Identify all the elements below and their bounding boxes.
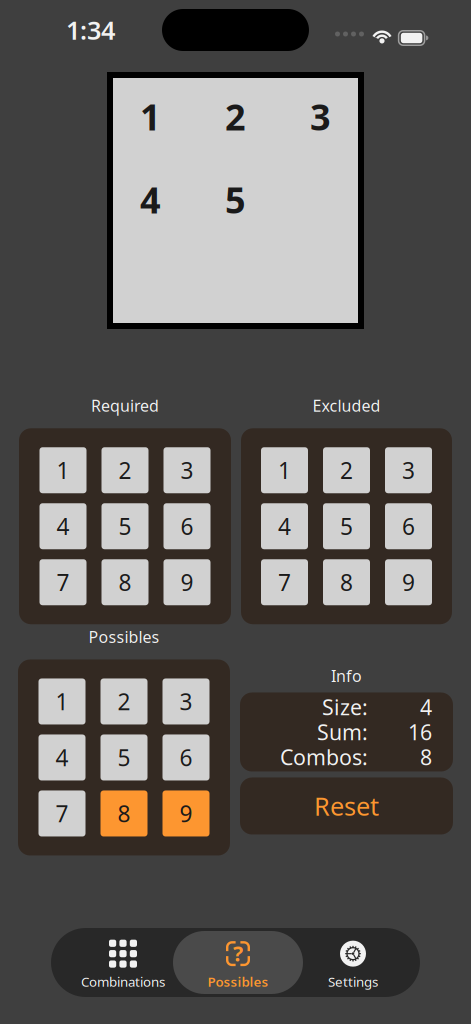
button[interactable]: 3 <box>163 447 210 493</box>
staticText: 5 <box>117 742 130 772</box>
staticText: 1 <box>278 455 291 485</box>
staticText: 4 <box>420 693 432 721</box>
staticText: 8 <box>118 567 131 597</box>
button[interactable]: 5 <box>101 503 148 549</box>
button[interactable]: 2 <box>100 678 147 724</box>
staticText: 7 <box>55 798 68 828</box>
button[interactable]: 3 <box>385 447 432 493</box>
button[interactable]: 8 <box>101 559 148 605</box>
staticText: 3 <box>310 93 331 140</box>
button[interactable]: 7 <box>261 559 308 605</box>
button[interactable]: 9 <box>162 790 209 836</box>
button[interactable]: 4 <box>261 503 308 549</box>
staticText: 9 <box>180 567 193 597</box>
button[interactable]: ? <box>173 931 303 994</box>
staticText: 3 <box>180 455 193 485</box>
button[interactable]: 1 <box>39 447 86 493</box>
button[interactable]: Reset <box>240 777 453 834</box>
button[interactable]: 9 <box>163 559 210 605</box>
button[interactable]: 8 <box>323 559 370 605</box>
button[interactable]: 9 <box>385 559 432 605</box>
staticText: 1 <box>55 686 68 716</box>
button[interactable]: 7 <box>39 559 86 605</box>
button[interactable]: 5 <box>323 503 370 549</box>
button[interactable]: 5 <box>100 734 147 780</box>
staticText: 8 <box>420 743 432 771</box>
staticText: 2 <box>118 455 131 485</box>
staticText: 4 <box>278 511 291 541</box>
staticText: 4 <box>55 742 68 772</box>
staticText: 2 <box>340 455 353 485</box>
staticText: 6 <box>179 742 192 772</box>
button[interactable]: 4 <box>39 503 86 549</box>
staticText: Info <box>331 665 362 686</box>
button[interactable]: Combinations <box>51 931 194 994</box>
button[interactable]: 4 <box>38 734 85 780</box>
staticText: 4 <box>56 511 69 541</box>
staticText: 5 <box>225 176 246 223</box>
staticText: 8 <box>117 798 130 828</box>
staticText: 1 <box>140 93 161 140</box>
button[interactable]: 2 <box>323 447 370 493</box>
staticText: Combos: <box>280 743 368 771</box>
staticText: ? <box>233 939 243 967</box>
staticText: 3 <box>179 686 192 716</box>
button[interactable]: 2 <box>101 447 148 493</box>
button[interactable]: 3 <box>162 678 209 724</box>
staticText: 6 <box>180 511 193 541</box>
staticText: Sum: <box>317 718 368 746</box>
staticText: Combinations <box>81 973 165 990</box>
button[interactable]: 8 <box>100 790 147 836</box>
staticText: 4 <box>140 176 161 223</box>
button[interactable]: 7 <box>38 790 85 836</box>
staticText: Possibles <box>207 973 268 990</box>
button[interactable]: 6 <box>385 503 432 549</box>
button[interactable]: 6 <box>163 503 210 549</box>
staticText: 9 <box>402 567 415 597</box>
button[interactable]: 6 <box>162 734 209 780</box>
staticText: 7 <box>278 567 291 597</box>
staticText: 5 <box>118 511 131 541</box>
staticText: 9 <box>179 798 192 828</box>
staticText: 1:34 <box>66 13 115 47</box>
staticText: Required <box>91 395 159 416</box>
button[interactable]: Settings <box>305 931 401 994</box>
staticText: 6 <box>402 511 415 541</box>
button[interactable]: 1 <box>38 678 85 724</box>
staticText: 1 <box>56 455 69 485</box>
staticText: 8 <box>340 567 353 597</box>
staticText: Size: <box>322 693 368 721</box>
staticText: 5 <box>340 511 353 541</box>
staticText: 2 <box>225 93 246 140</box>
staticText: Settings <box>328 973 378 990</box>
staticText: Possibles <box>88 626 159 647</box>
staticText: 2 <box>117 686 130 716</box>
staticText: Excluded <box>312 395 380 416</box>
staticText: 16 <box>408 718 432 746</box>
staticText: 7 <box>56 567 69 597</box>
button[interactable]: 1 <box>261 447 308 493</box>
staticText: Reset <box>314 789 379 823</box>
staticText: 3 <box>402 455 415 485</box>
